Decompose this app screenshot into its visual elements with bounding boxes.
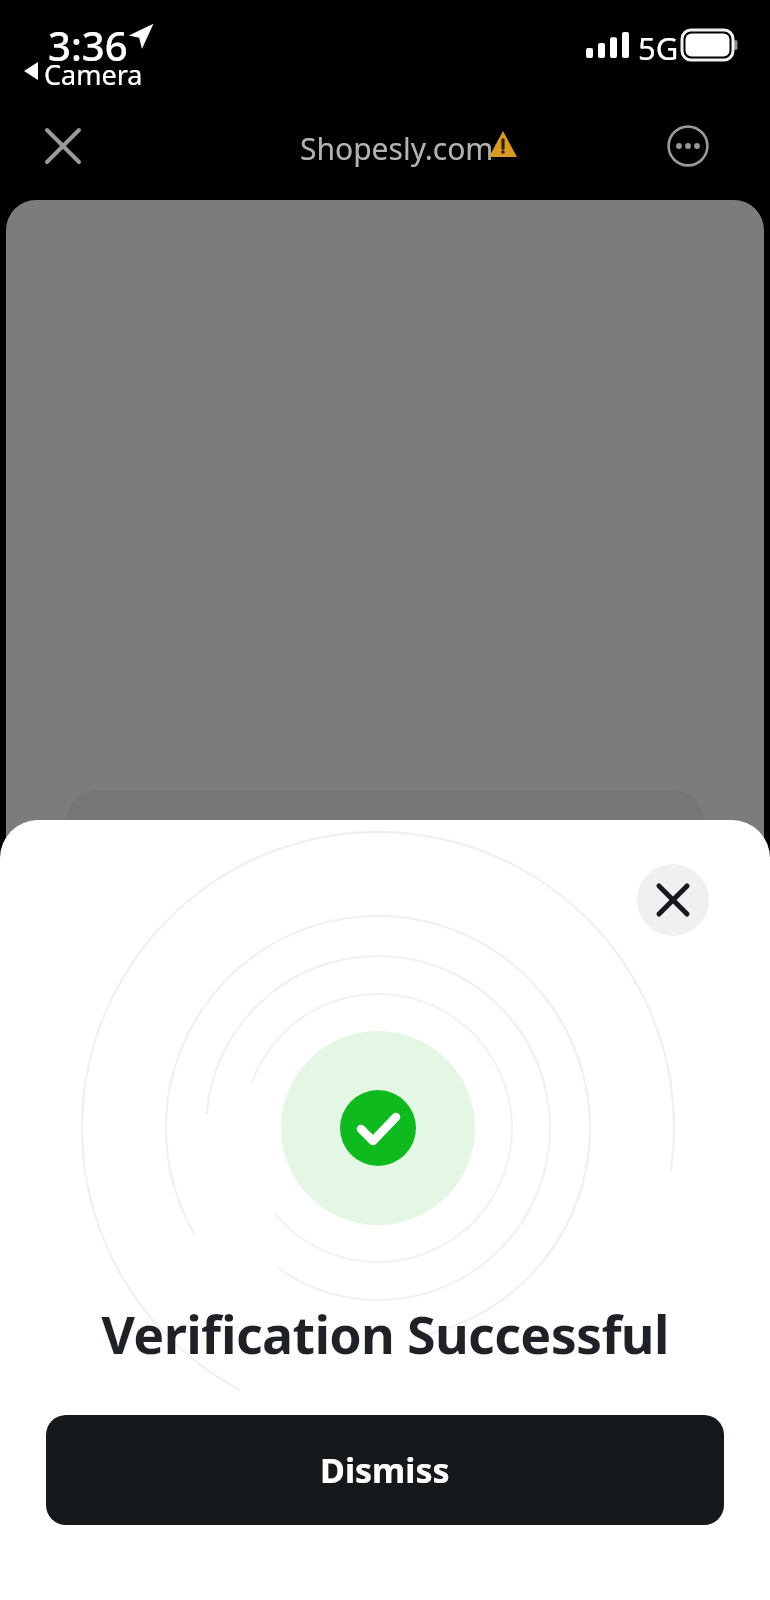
staticText: 5G bbox=[638, 27, 679, 69]
staticText: Verification Successful bbox=[101, 1298, 669, 1368]
button[interactable]: Close bbox=[28, 111, 98, 181]
staticText: Shopesly.com bbox=[300, 128, 494, 169]
staticText: 3:36 bbox=[48, 18, 128, 72]
staticText: Camera bbox=[44, 56, 143, 93]
button[interactable]: Close bbox=[637, 864, 709, 936]
button[interactable]: Dismiss bbox=[46, 1415, 724, 1525]
staticText: Dismiss bbox=[320, 1447, 450, 1493]
button[interactable]: More options bbox=[653, 111, 723, 181]
